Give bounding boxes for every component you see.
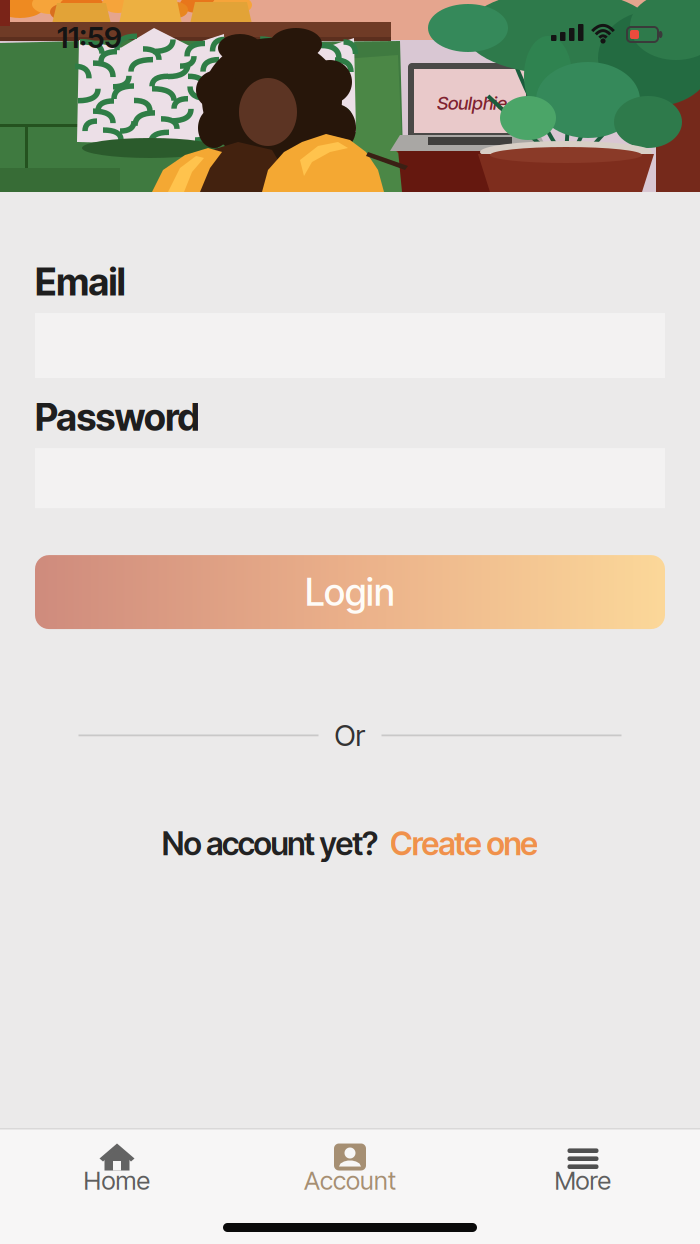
staticText: Email [35,260,126,304]
staticText: Account [304,1165,396,1195]
staticText: Home [83,1165,150,1195]
button[interactable]: Login [35,555,665,629]
staticText: Create one [390,825,538,862]
staticText: 11:59 [57,20,122,55]
button[interactable]: Create one [390,825,538,862]
staticText: Or [334,718,365,753]
staticText: Password [35,395,199,439]
button[interactable]: Account [233,1143,466,1195]
staticText: More [554,1165,611,1195]
staticText: No account yet? [162,825,378,862]
button[interactable]: Home [0,1143,233,1195]
button[interactable]: More [466,1143,699,1195]
staticText: Login [305,570,395,614]
staticText: Soulphie [437,92,507,114]
